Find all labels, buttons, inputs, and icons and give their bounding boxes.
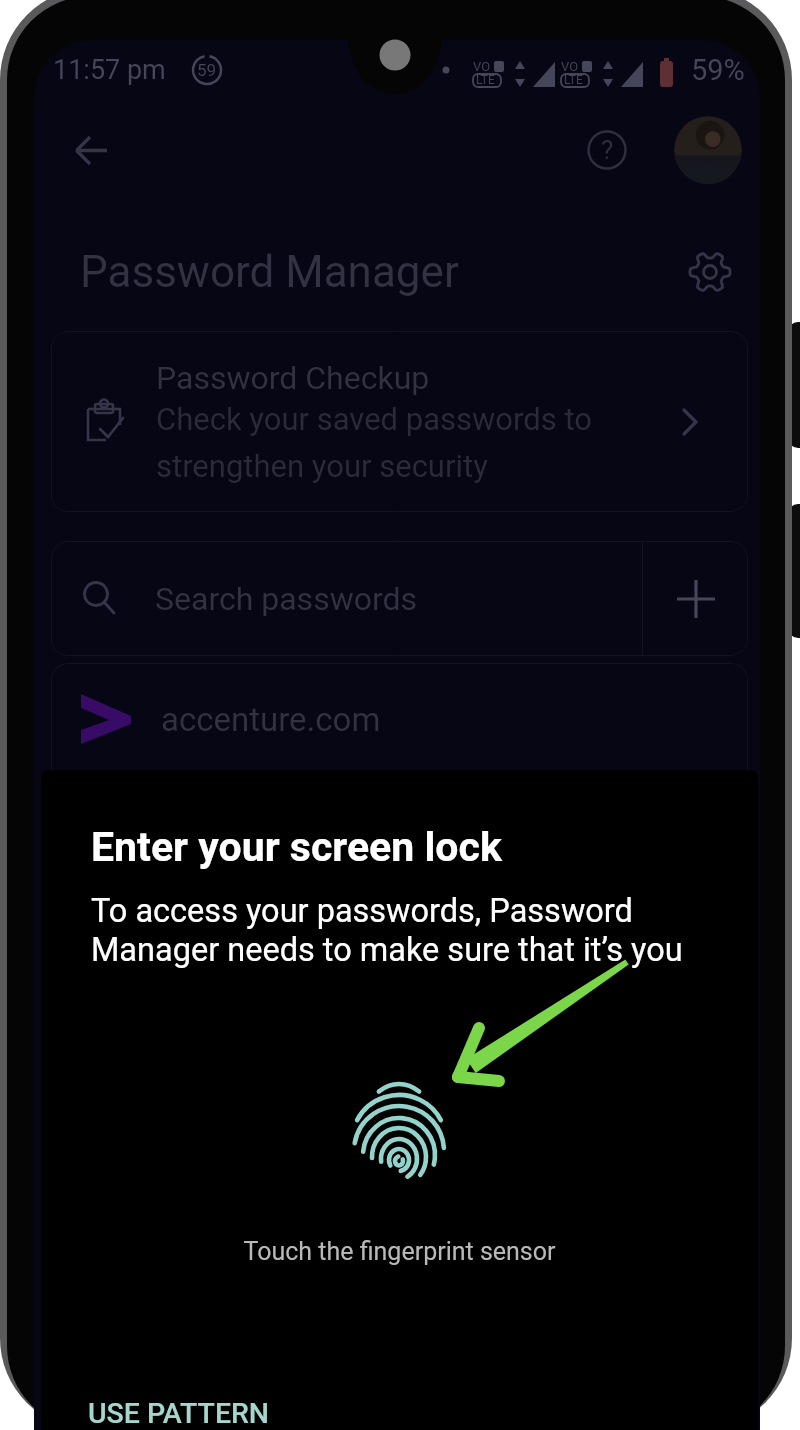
staticText: 59 [197, 60, 217, 80]
staticText: USE PATTERN [88, 1397, 270, 1430]
staticText: VO [561, 59, 579, 74]
staticText: accenture.com [161, 700, 381, 739]
button[interactable]: Settings [680, 242, 740, 302]
staticText: VO [473, 59, 491, 74]
staticText: Enter your screen lock [91, 823, 502, 871]
staticText: LTE [564, 73, 583, 87]
button[interactable]: accenture.com [51, 663, 748, 775]
button[interactable]: Account [674, 116, 742, 184]
staticText: 11:57 pm [53, 54, 166, 86]
button[interactable]: Password Checkup [51, 331, 748, 512]
button[interactable]: Help [578, 121, 636, 179]
staticText: LTE [476, 73, 495, 87]
button[interactable]: USE PATTERN [88, 1397, 270, 1430]
button[interactable]: Add password [643, 541, 748, 656]
staticText: ? [601, 135, 614, 165]
button[interactable]: Back [59, 118, 123, 182]
staticText: Password Checkup [156, 359, 430, 397]
staticText: 59% [691, 53, 745, 87]
staticText: Password Manager [80, 246, 459, 298]
staticText: Check your saved passwords to strengthen… [156, 401, 592, 485]
staticText: To access your passwords, Password Manag… [91, 892, 683, 969]
staticText: Touch the fingerprint sensor [41, 1237, 758, 1266]
staticText: Search passwords [155, 580, 418, 618]
button[interactable]: Search passwords [51, 541, 642, 656]
